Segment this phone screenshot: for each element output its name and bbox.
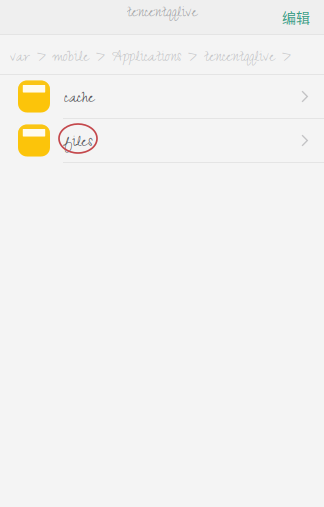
staticText: 编辑 [282,7,310,27]
button[interactable]: var > mobile > Applications > tencentqql… [0,41,291,68]
staticText: tencentqqlive [126,0,197,28]
button[interactable]: files [0,119,324,162]
staticText: files [64,129,93,158]
staticText: var > mobile > Applications > tencentqql… [10,45,291,72]
button[interactable]: cache [0,75,324,118]
staticText: cache [64,85,95,114]
button[interactable]: 编辑 [282,7,324,27]
